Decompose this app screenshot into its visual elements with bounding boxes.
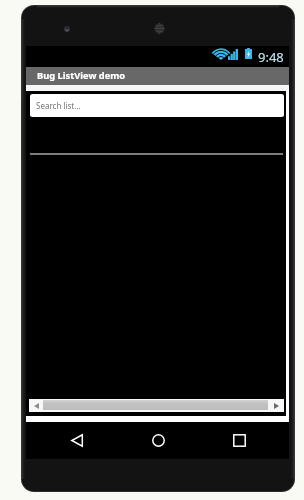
other: Wi-Fi [214,49,228,60]
staticText: Bug ListView demo [37,69,126,82]
staticText: Search list... [36,100,81,111]
button[interactable]: Search list... [30,94,284,117]
other: Cellular signal [228,49,238,60]
button[interactable]: Recent apps [225,426,253,454]
staticText: 9:48 [258,48,284,66]
button[interactable]: Scroll right [268,399,284,412]
button[interactable]: Home [144,426,172,454]
button[interactable]: Back [63,426,91,454]
other: Battery [245,48,252,59]
button[interactable]: Horizontal scroll [43,399,268,412]
button[interactable]: Scroll left [29,399,43,412]
button[interactable]: Bug ListView demo [26,67,289,86]
